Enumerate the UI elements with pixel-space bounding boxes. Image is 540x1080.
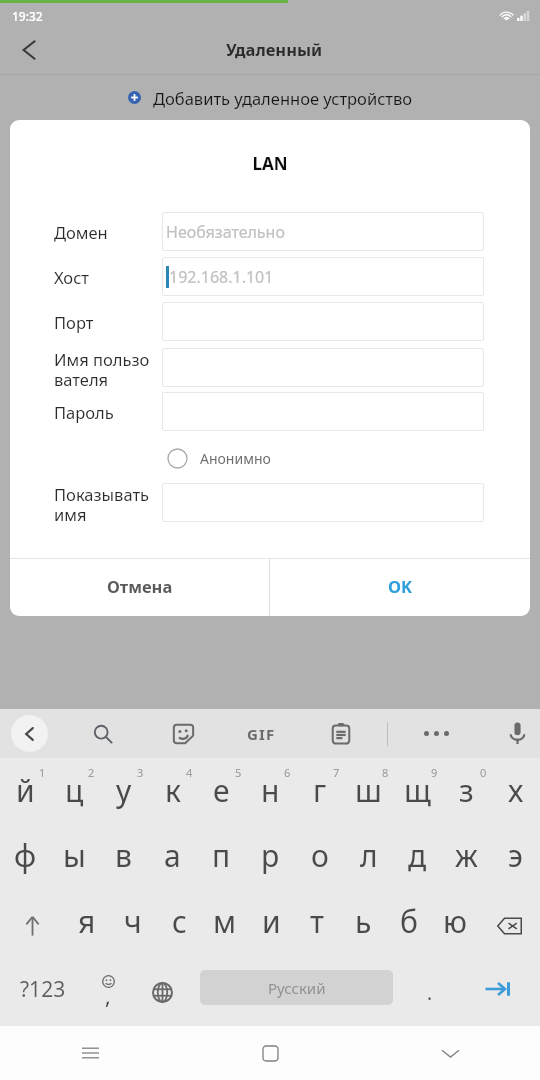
button[interactable]: б <box>386 892 432 959</box>
staticText: Добавить удаленное устройство <box>153 87 413 109</box>
button[interactable]: и <box>248 892 294 959</box>
button[interactable]: у <box>99 758 148 825</box>
staticText: Отмена <box>107 575 173 597</box>
button[interactable]: о <box>295 825 344 892</box>
staticText: к <box>165 770 181 811</box>
staticText: щ <box>404 770 431 811</box>
staticText: з <box>459 770 474 811</box>
button[interactable]: OK <box>270 559 530 616</box>
staticText: т <box>310 901 324 942</box>
staticText: э <box>508 835 523 876</box>
button[interactable]: Необязательно <box>162 212 484 251</box>
button[interactable]: х <box>491 758 540 825</box>
button[interactable]: ф <box>0 825 50 892</box>
staticText: н <box>261 770 280 811</box>
button[interactable]: а <box>148 825 197 892</box>
staticText: Хост <box>54 266 162 288</box>
button[interactable]: т <box>294 892 340 959</box>
staticText: 192.168.1.101 <box>169 266 274 288</box>
staticText: г <box>313 770 327 811</box>
button[interactable]: щ <box>393 758 442 825</box>
staticText: 19:32 <box>12 8 43 24</box>
staticText: 3 <box>137 765 144 780</box>
staticText: Удаленный <box>226 38 323 60</box>
button[interactable]: Emoji <box>86 959 130 1026</box>
button[interactable]: ч <box>110 892 156 959</box>
button[interactable]: Hide keyboard <box>360 1026 540 1080</box>
staticText: ы <box>63 835 86 876</box>
staticText: ш <box>355 770 382 811</box>
staticText: , <box>105 982 111 1011</box>
staticText: у <box>116 770 132 811</box>
button[interactable]: п <box>197 825 246 892</box>
button[interactable]: я <box>64 892 110 959</box>
button[interactable]: Clipboard <box>305 709 377 758</box>
button[interactable]: г <box>295 758 344 825</box>
staticText: б <box>400 901 418 942</box>
button[interactable]: ц <box>50 758 99 825</box>
button[interactable] <box>162 348 484 387</box>
staticText: д <box>408 835 427 876</box>
staticText: Пароль <box>54 401 162 423</box>
button[interactable]: Search <box>58 709 148 758</box>
button[interactable]: ь <box>340 892 386 959</box>
button[interactable]: More options <box>388 709 484 758</box>
staticText: с <box>172 901 187 942</box>
button[interactable]: э <box>491 825 540 892</box>
staticText: Анонимно <box>200 449 271 468</box>
staticText: 9 <box>431 765 438 780</box>
button[interactable]: Shift <box>0 892 64 959</box>
staticText: ?123 <box>20 975 66 1004</box>
staticText: в <box>115 835 132 876</box>
button[interactable]: з <box>442 758 491 825</box>
button[interactable]: л <box>344 825 393 892</box>
button[interactable]: Добавить удаленное устройство <box>0 75 540 120</box>
button[interactable]: Recents <box>0 1026 180 1080</box>
staticText: 4 <box>186 765 193 780</box>
button[interactable]: с <box>156 892 202 959</box>
button[interactable]: й <box>0 758 50 825</box>
staticText: 1 <box>39 765 46 780</box>
button[interactable]: д <box>393 825 442 892</box>
staticText: я <box>78 901 96 942</box>
staticText: Имя пользо вателя <box>54 348 162 387</box>
button[interactable]: . <box>393 959 467 1026</box>
button[interactable]: Home <box>180 1026 360 1080</box>
button[interactable]: ы <box>50 825 99 892</box>
button[interactable]: Back <box>5 26 53 74</box>
button[interactable]: 192.168.1.101 <box>162 257 484 296</box>
button[interactable]: Change language <box>130 959 194 1026</box>
staticText: Русский <box>268 978 326 998</box>
button[interactable]: ш <box>344 758 393 825</box>
button[interactable]: е <box>197 758 246 825</box>
button[interactable]: Русский <box>200 970 393 1005</box>
staticText: м <box>213 901 237 942</box>
button[interactable]: Stickers <box>148 709 218 758</box>
button[interactable]: ?123 <box>0 959 86 1026</box>
button[interactable] <box>162 392 484 431</box>
button[interactable]: ю <box>432 892 478 959</box>
button[interactable]: ж <box>442 825 491 892</box>
staticText: ю <box>443 901 467 942</box>
button[interactable]: Backspace <box>478 892 540 959</box>
staticText: е <box>213 770 230 811</box>
button[interactable]: Back <box>0 709 58 758</box>
button[interactable] <box>162 483 484 522</box>
staticText: 2 <box>88 765 95 780</box>
staticText: 7 <box>333 765 340 780</box>
button[interactable]: Next <box>467 959 540 1026</box>
button[interactable]: н <box>246 758 295 825</box>
button[interactable] <box>162 302 484 341</box>
button[interactable]: м <box>202 892 248 959</box>
button[interactable]: в <box>99 825 148 892</box>
staticText: ч <box>124 901 142 942</box>
staticText: й <box>16 770 35 811</box>
button[interactable]: Voice input <box>484 709 540 758</box>
button[interactable]: р <box>246 825 295 892</box>
button[interactable]: GIF <box>218 709 305 758</box>
staticText: Порт <box>54 311 162 333</box>
button[interactable]: Отмена <box>10 559 269 616</box>
button[interactable]: к <box>148 758 197 825</box>
button[interactable]: Anonymous <box>167 448 188 469</box>
staticText: . <box>427 980 433 1006</box>
